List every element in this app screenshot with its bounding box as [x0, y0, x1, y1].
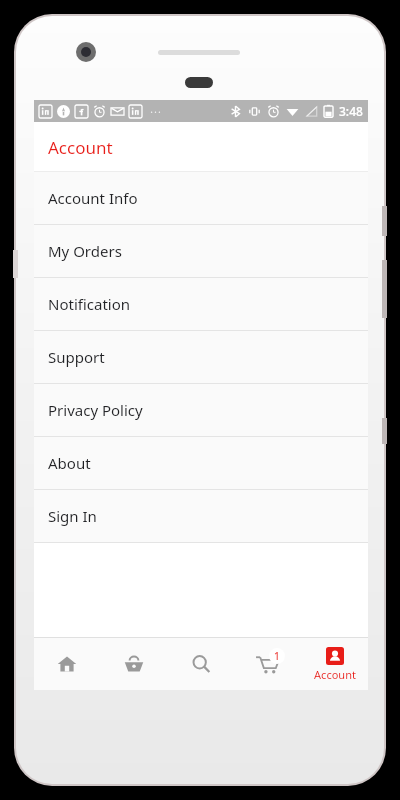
button[interactable]: Account	[34, 122, 368, 172]
staticText: Account	[314, 667, 356, 682]
button[interactable]: Account Info	[34, 172, 368, 225]
button[interactable]: Privacy Policy	[34, 384, 368, 437]
button[interactable]: My Orders	[34, 225, 368, 278]
button[interactable]: Account	[301, 638, 368, 690]
staticText: 1	[274, 649, 280, 663]
staticText: My Orders	[48, 241, 122, 261]
staticText: Account Info	[48, 188, 138, 208]
button[interactable]: About	[34, 437, 368, 490]
button[interactable]: Home	[34, 638, 100, 690]
staticText: Notification	[48, 294, 131, 314]
staticText: Account	[48, 136, 113, 159]
button[interactable]: Shop	[100, 638, 167, 690]
button[interactable]: Sign In	[34, 490, 368, 543]
staticText: Privacy Policy	[48, 400, 143, 420]
button[interactable]: Support	[34, 331, 368, 384]
staticText: 3:48	[339, 103, 363, 119]
staticText: About	[48, 453, 91, 473]
staticText: Sign In	[48, 506, 97, 526]
button[interactable]: Search	[167, 638, 234, 690]
button[interactable]: Cart	[234, 638, 301, 690]
staticText: Support	[48, 347, 105, 367]
button[interactable]: Notification	[34, 278, 368, 331]
